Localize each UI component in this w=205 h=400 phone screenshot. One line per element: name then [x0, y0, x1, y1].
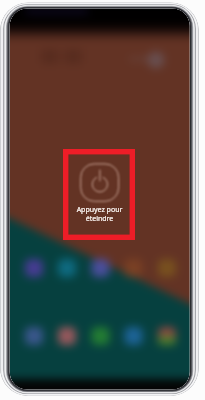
- staticText: Appuyez pour éteindre: [68, 205, 131, 400]
- button[interactable]: Appuyez pour éteindre: [68, 205, 131, 400]
